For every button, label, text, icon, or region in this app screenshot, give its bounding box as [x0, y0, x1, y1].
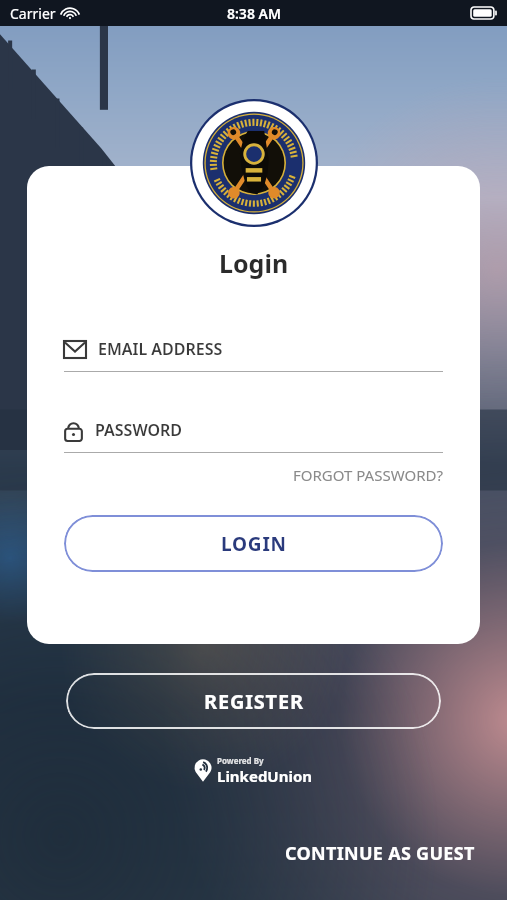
button[interactable]: EMAIL ADDRESS — [64, 338, 443, 372]
button[interactable]: REGISTER — [66, 673, 441, 729]
staticText: EMAIL ADDRESS — [98, 338, 223, 360]
staticText: LinkedUnion — [217, 766, 313, 786]
staticText: REGISTER — [204, 688, 304, 715]
button[interactable]: FORGOT PASSWORD? — [293, 461, 443, 489]
staticText: PASSWORD — [95, 419, 183, 441]
staticText: Login — [219, 246, 289, 280]
staticText: FORGOT PASSWORD? — [293, 465, 443, 485]
staticText: Carrier — [10, 4, 56, 23]
button[interactable]: LOGIN — [64, 515, 443, 572]
button[interactable]: PASSWORD — [64, 419, 443, 453]
staticText: Powered By — [217, 755, 264, 766]
button[interactable]: CONTINUE AS GUEST — [281, 837, 479, 870]
staticText: CONTINUE AS GUEST — [285, 841, 475, 866]
staticText: LOGIN — [221, 531, 287, 557]
staticText: 8:38 AM — [227, 4, 281, 23]
